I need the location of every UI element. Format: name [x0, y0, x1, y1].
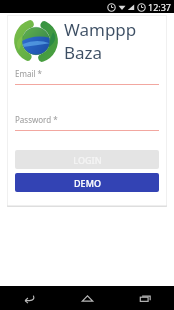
- button[interactable]: Home: [58, 286, 116, 310]
- other: Wamppp Baza logo: [13, 18, 59, 64]
- staticText: 12:37: [148, 1, 172, 13]
- button[interactable]: Email *: [15, 68, 159, 85]
- staticText: Password *: [15, 114, 58, 125]
- staticText: Wamppp: [64, 18, 137, 41]
- button[interactable]: DEMO: [15, 173, 159, 192]
- button[interactable]: Password *: [15, 114, 159, 131]
- button[interactable]: Back: [0, 286, 58, 310]
- staticText: DEMO: [74, 177, 101, 189]
- staticText: Email *: [15, 68, 43, 79]
- staticText: LOGIN: [73, 154, 102, 166]
- button[interactable]: Recent apps: [116, 286, 174, 310]
- staticText: Baza: [64, 41, 103, 64]
